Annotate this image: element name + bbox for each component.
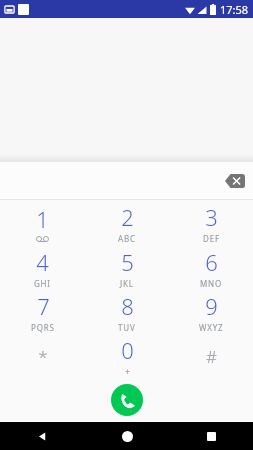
- button[interactable]: 0: [85, 334, 169, 378]
- staticText: 8: [121, 291, 134, 321]
- staticText: 17:58: [220, 2, 249, 17]
- button[interactable]: *: [0, 334, 85, 378]
- button[interactable]: 5: [85, 245, 169, 290]
- staticText: 2: [121, 202, 134, 232]
- staticText: #: [206, 345, 217, 368]
- button[interactable]: 7: [0, 290, 85, 334]
- staticText: JKL: [120, 278, 134, 289]
- button[interactable]: 4: [0, 245, 85, 290]
- staticText: +: [125, 365, 131, 377]
- staticText: GHI: [34, 278, 51, 289]
- staticText: 4: [36, 247, 49, 277]
- button[interactable]: 8: [85, 290, 169, 334]
- staticText: 7: [37, 291, 50, 321]
- button[interactable]: 1: [0, 200, 85, 245]
- button[interactable]: Home: [85, 422, 169, 450]
- staticText: *: [38, 345, 48, 368]
- button[interactable]: Recent apps: [169, 422, 253, 450]
- button[interactable]: 6: [169, 245, 253, 290]
- staticText: 3: [205, 202, 218, 232]
- staticText: 6: [205, 247, 218, 277]
- staticText: DEF: [203, 233, 220, 244]
- button[interactable]: Delete: [222, 171, 248, 191]
- staticText: ABC: [118, 233, 136, 244]
- staticText: 5: [121, 247, 134, 277]
- staticText: MNO: [200, 278, 222, 289]
- button[interactable]: 9: [169, 290, 253, 334]
- button[interactable]: Back: [0, 422, 85, 450]
- staticText: 0: [121, 335, 134, 365]
- button[interactable]: #: [169, 334, 253, 378]
- button[interactable]: Call: [111, 384, 143, 416]
- staticText: PQRS: [31, 322, 55, 333]
- staticText: WXYZ: [199, 322, 224, 333]
- staticText: 1: [36, 204, 49, 234]
- staticText: 9: [205, 291, 218, 321]
- button[interactable]: 2: [85, 200, 169, 245]
- button[interactable]: 3: [169, 200, 253, 245]
- staticText: TUV: [118, 322, 136, 333]
